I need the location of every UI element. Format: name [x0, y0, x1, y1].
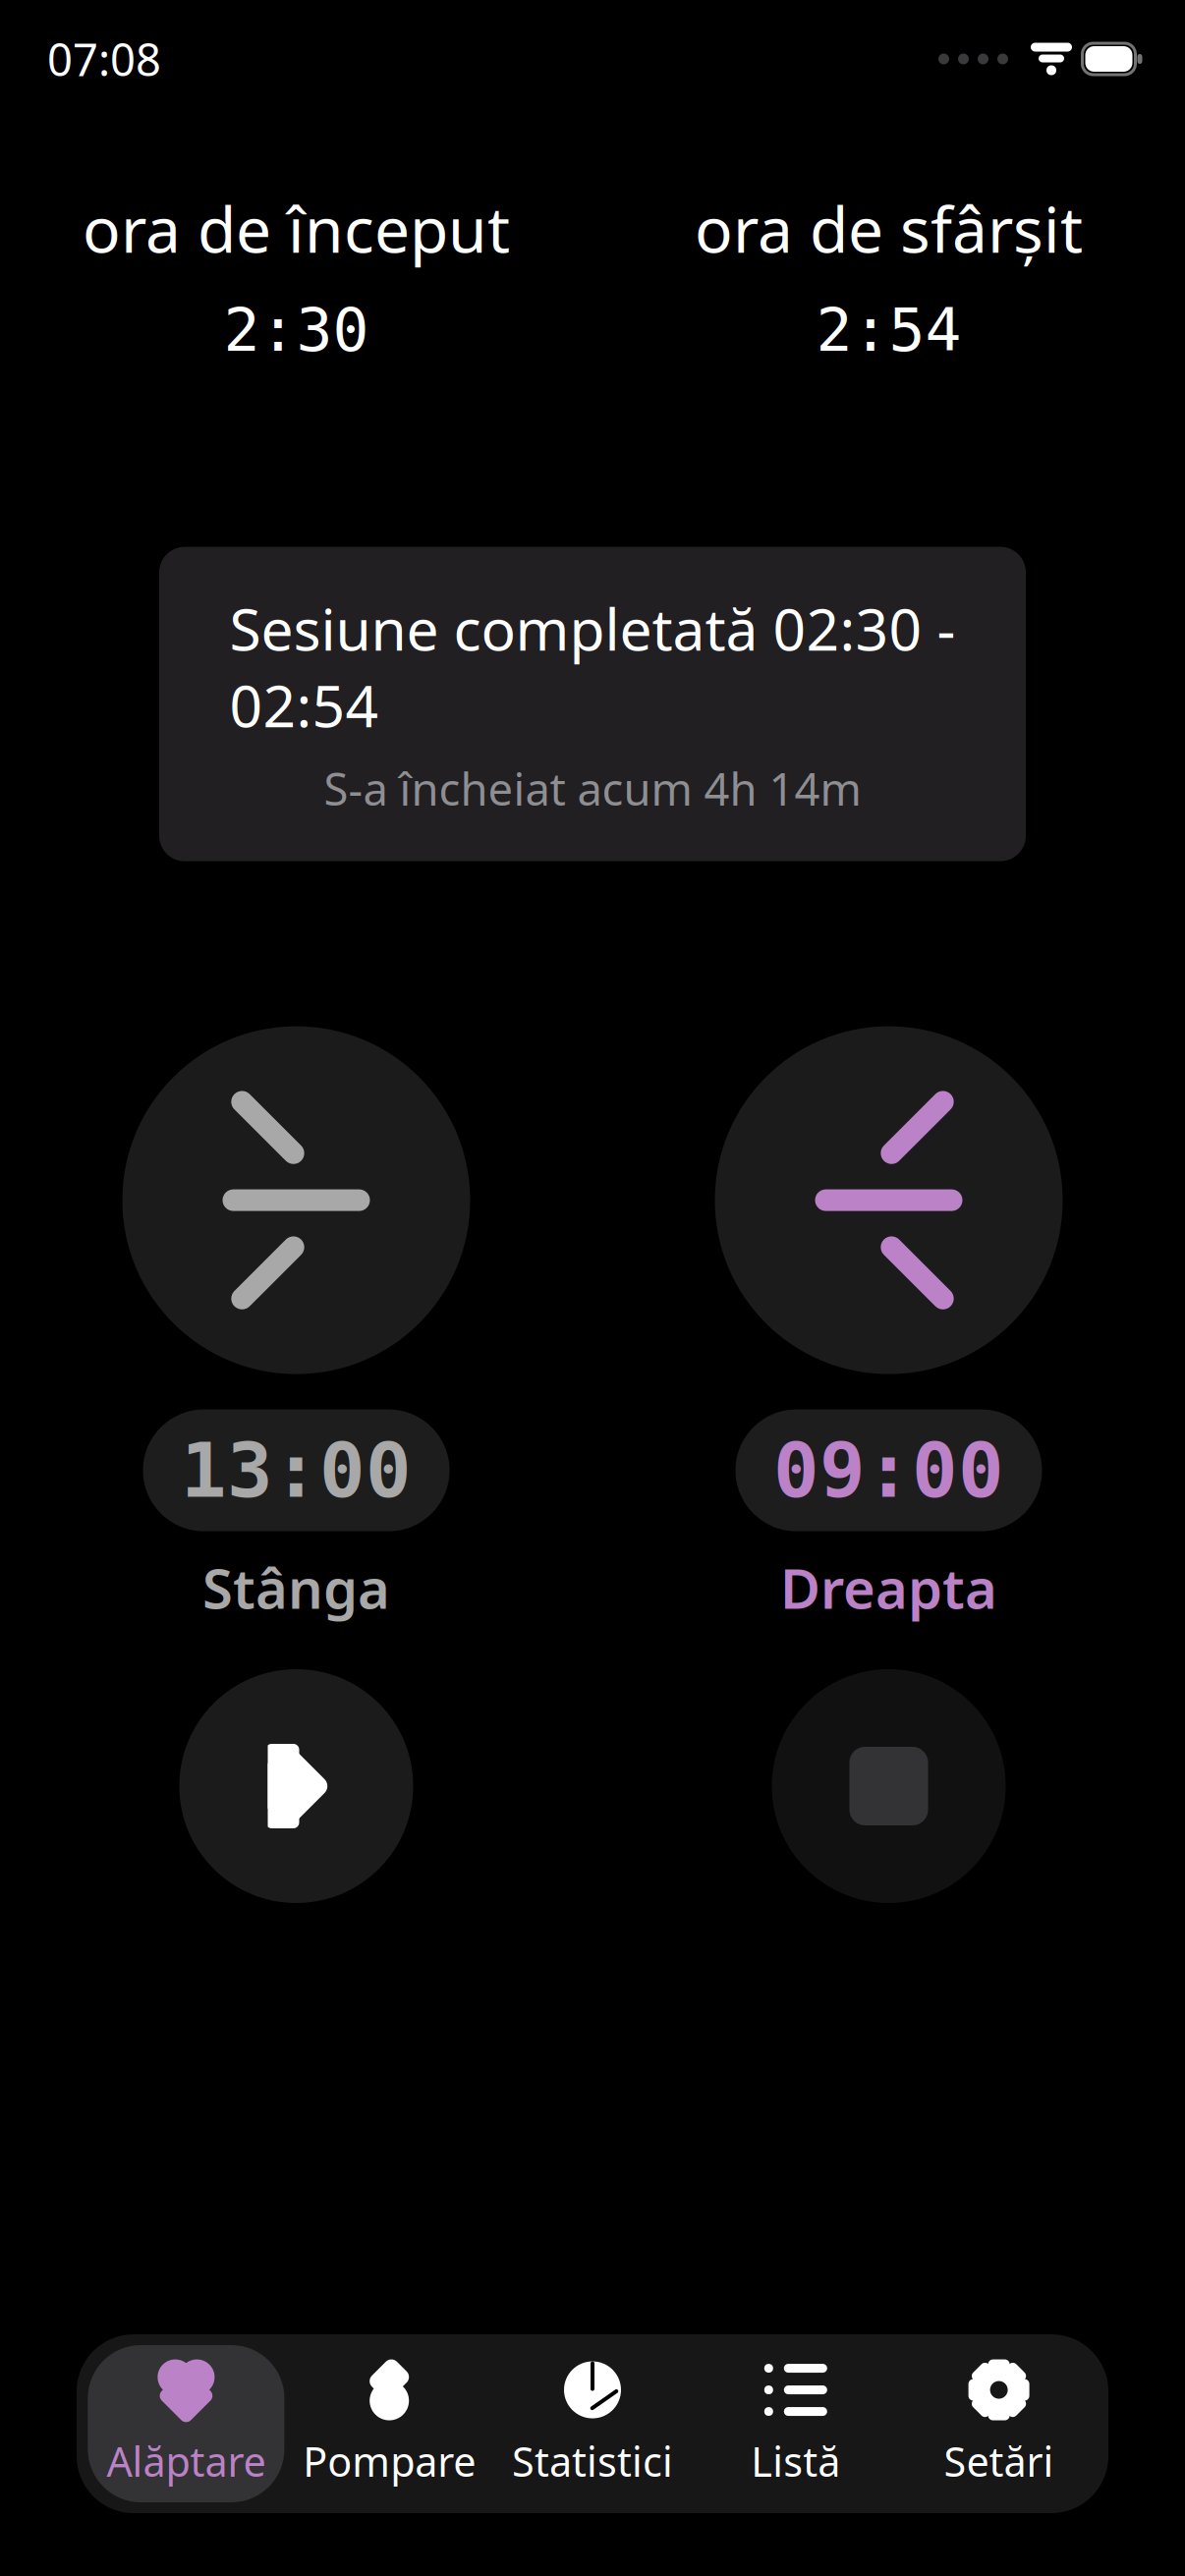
staticText: Listă [751, 2434, 840, 2488]
staticText: Dreapta [780, 1551, 997, 1624]
button[interactable]: Setări [901, 2345, 1097, 2502]
staticText: Sesiune completată 02:30 - 02:54 [229, 590, 956, 743]
staticText: S-a încheiat acum 4h 14m [324, 759, 861, 818]
staticText: Stânga [202, 1551, 390, 1624]
staticText: 07:08 [47, 29, 161, 89]
staticText: Statistici [512, 2434, 673, 2488]
button[interactable]: 09:00 [735, 1409, 1042, 1531]
staticText: ora de început [83, 187, 510, 270]
button[interactable]: Sân stâng [122, 1026, 470, 1374]
button[interactable]: Listă [697, 2345, 894, 2502]
button[interactable]: Alăptare [88, 2345, 284, 2502]
staticText: 09:00 [773, 1427, 1004, 1513]
staticText: Alăptare [107, 2434, 266, 2488]
staticText: ora de sfârșit [695, 187, 1083, 270]
button[interactable]: Sân drept [715, 1026, 1063, 1374]
button[interactable]: Oprește [772, 1669, 1006, 1903]
staticText: 13:00 [181, 1427, 412, 1513]
button[interactable]: Pompare [291, 2345, 488, 2502]
button[interactable]: Statistici [494, 2345, 691, 2502]
button[interactable]: Pornește [179, 1669, 413, 1903]
staticText: 2:54 [816, 296, 961, 364]
staticText: 2:30 [224, 296, 369, 364]
button[interactable]: 13:00 [143, 1409, 450, 1531]
staticText: Setări [944, 2434, 1054, 2488]
staticText: Pompare [303, 2434, 476, 2488]
